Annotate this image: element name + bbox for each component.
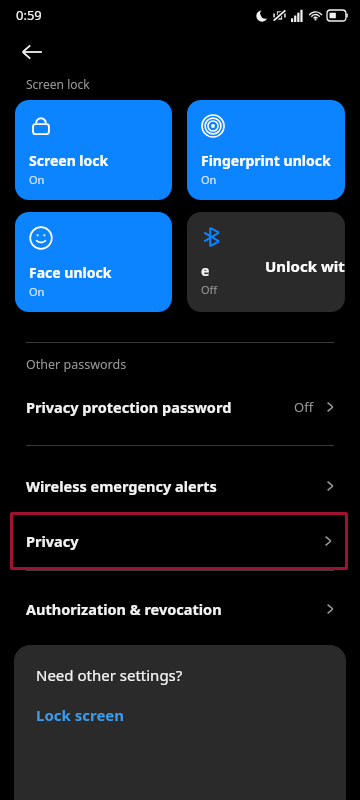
staticText: Off — [294, 398, 314, 416]
staticText: Lock screen — [36, 705, 125, 725]
staticText: Authorization & revocation — [26, 599, 322, 619]
staticText: Privacy protection password — [26, 397, 294, 417]
button[interactable]: Screen lock — [15, 100, 172, 200]
button[interactable]: Privacy protection password — [0, 385, 360, 429]
button[interactable]: e — [187, 212, 345, 312]
staticText: Privacy — [26, 531, 320, 551]
button[interactable]: Authorization & revocation — [0, 587, 360, 631]
button[interactable]: Fingerprint unlock — [187, 100, 345, 200]
staticText: Face unlock — [29, 263, 112, 282]
button[interactable]: Wireless emergency alerts — [0, 464, 360, 508]
staticText: On — [29, 172, 45, 187]
staticText: Fingerprint unlock — [201, 151, 331, 170]
staticText: Screen lock — [29, 151, 109, 170]
staticText: On — [29, 284, 45, 299]
button[interactable]: Lock screen — [36, 705, 125, 725]
button[interactable]: Face unlock — [15, 212, 172, 312]
staticText: Off — [201, 282, 218, 297]
staticText: e — [201, 261, 210, 280]
button[interactable]: Privacy — [10, 512, 348, 570]
staticText: 0:59 — [16, 6, 42, 24]
button[interactable]: Back — [10, 30, 54, 74]
staticText: Other passwords — [26, 356, 127, 373]
staticText: Wireless emergency alerts — [26, 476, 322, 496]
staticText: On — [201, 172, 217, 187]
staticText: Screen lock — [26, 76, 90, 92]
staticText: Need other settings? — [36, 665, 183, 685]
staticText: Unlock wit — [265, 256, 345, 276]
